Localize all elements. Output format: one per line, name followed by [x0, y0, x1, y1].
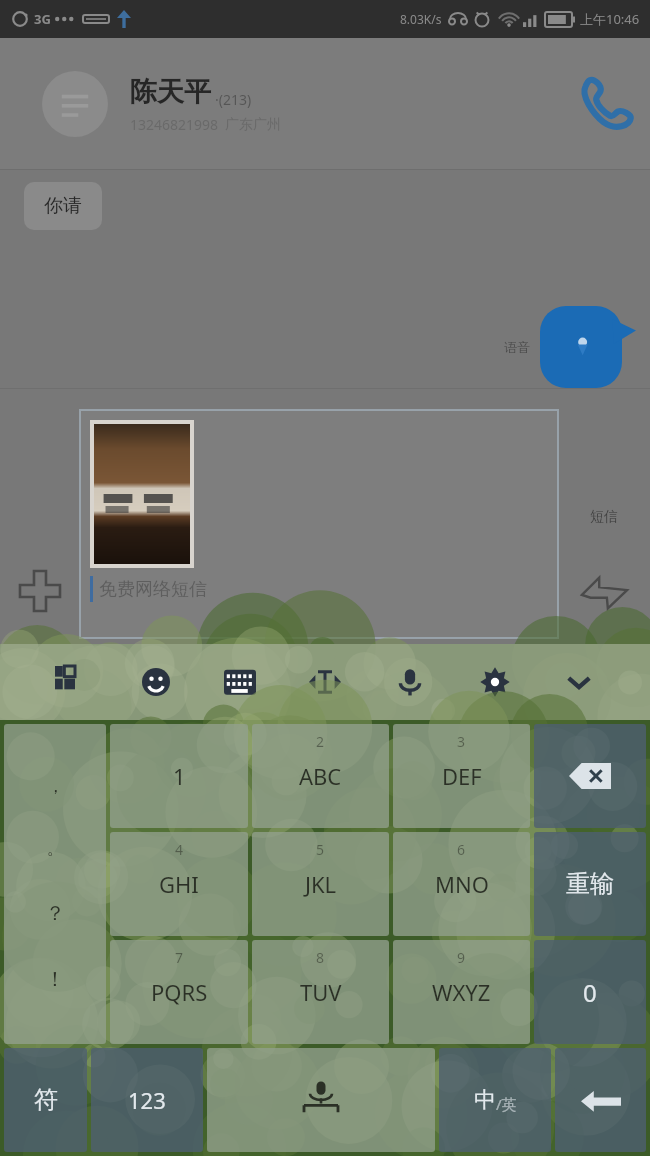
staticText: 陈天平 [130, 75, 211, 109]
button[interactable]: 7 [110, 940, 248, 1044]
staticText: 0 [583, 976, 597, 1009]
staticText: /英 [496, 1094, 517, 1114]
staticText: 短信 [590, 508, 618, 526]
staticText: 13246821998 [130, 115, 219, 134]
staticText: MNO [435, 869, 489, 899]
button[interactable]: Send [576, 564, 632, 620]
staticText: ？ [45, 901, 65, 926]
button[interactable]: 8 [252, 940, 389, 1044]
staticText: PQRS [151, 977, 208, 1007]
button[interactable]: 3 [393, 724, 530, 828]
staticText: 语音 [504, 339, 530, 355]
staticText: 你请 [44, 194, 82, 218]
staticText: 4 [175, 840, 184, 859]
button[interactable]: 免费网络短信 [80, 410, 558, 638]
button[interactable]: 符 [4, 1048, 87, 1152]
staticText: 7 [175, 948, 184, 967]
button[interactable]: 重输 [534, 832, 646, 936]
staticText: ， [47, 776, 64, 797]
button[interactable]: Add attachment [0, 558, 80, 624]
staticText: 2 [316, 732, 325, 751]
staticText: GHI [159, 869, 199, 899]
button[interactable]: Apps [43, 654, 99, 710]
staticText: DEF [442, 761, 482, 791]
button[interactable]: 123 [91, 1048, 203, 1152]
staticText: 重输 [566, 869, 614, 899]
button[interactable]: Switch language [439, 1048, 551, 1152]
button[interactable]: Backspace [534, 724, 646, 828]
button[interactable]: 1 [110, 724, 248, 828]
button[interactable]: 4 [110, 832, 248, 936]
button[interactable]: 9 [393, 940, 530, 1044]
button[interactable]: 0 [534, 940, 646, 1044]
button[interactable]: 6 [393, 832, 530, 936]
staticText: 8 [316, 948, 325, 967]
button[interactable]: Enter [555, 1048, 646, 1152]
staticText: 9 [457, 948, 466, 967]
staticText: 中 [474, 1086, 496, 1114]
button[interactable]: 2 [252, 724, 389, 828]
button[interactable]: Move cursor [297, 654, 353, 710]
staticText: 广东广州 [225, 116, 281, 134]
staticText: TUV [300, 977, 342, 1007]
button[interactable]: 你请 [24, 182, 102, 230]
staticText: ·(213) [215, 90, 252, 109]
button[interactable] [94, 424, 190, 564]
staticText: 符 [34, 1085, 58, 1115]
staticText: 123 [128, 1085, 166, 1115]
button[interactable]: Punctuation [4, 724, 106, 1044]
staticText: ABC [299, 761, 342, 791]
staticText: WXYZ [432, 977, 491, 1007]
button[interactable]: Call [564, 61, 650, 147]
staticText: 6 [457, 840, 466, 859]
staticText: 8.03K/s [400, 11, 442, 27]
staticText: 1 [173, 761, 186, 791]
button[interactable] [540, 306, 636, 388]
button[interactable]: Settings [467, 654, 523, 710]
button[interactable]: Keyboard [212, 654, 268, 710]
staticText: 3G [34, 10, 51, 28]
staticText: 免费网络短信 [99, 578, 207, 601]
staticText: 。 [47, 838, 64, 859]
button[interactable]: Emoji [128, 654, 184, 710]
staticText: 5 [316, 840, 325, 859]
button[interactable]: Voice input [382, 654, 438, 710]
staticText: ！ [45, 967, 65, 992]
staticText: JKL [305, 869, 337, 899]
button[interactable]: 5 [252, 832, 389, 936]
button[interactable]: Space [207, 1048, 435, 1152]
button[interactable]: Hide keyboard [551, 654, 607, 710]
staticText: 上午10:46 [580, 10, 640, 28]
staticText: 3 [457, 732, 466, 751]
